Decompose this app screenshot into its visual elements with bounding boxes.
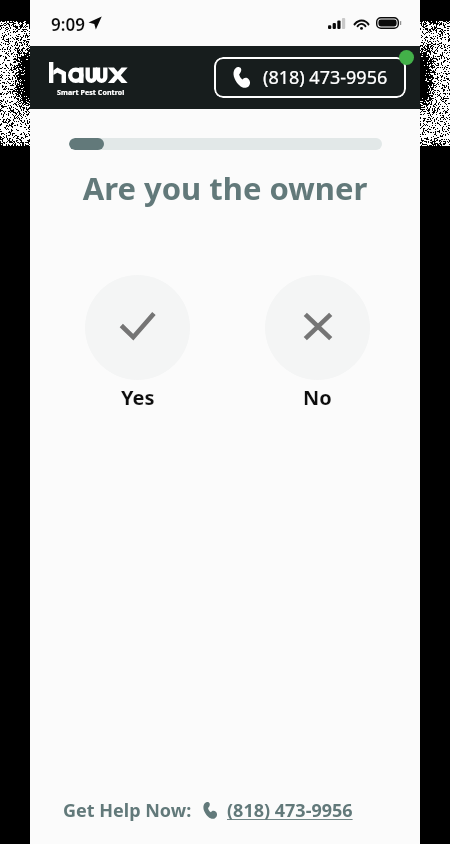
button[interactable]: No [265, 275, 370, 411]
button[interactable]: (818) 473-9956 [214, 57, 406, 98]
staticText: Yes [121, 384, 155, 411]
staticText: Are you the owner [30, 167, 420, 209]
button[interactable]: Yes [85, 275, 190, 411]
staticText: No [303, 384, 332, 411]
staticText: (818) 473-9956 [263, 65, 388, 90]
button[interactable]: (818) 473-9956 [203, 798, 353, 823]
staticText: Get Help Now: [63, 798, 192, 823]
staticText: Smart Pest Control [57, 88, 125, 98]
staticText: 9:09 [51, 13, 85, 36]
staticText: (818) 473-9956 [227, 798, 353, 823]
